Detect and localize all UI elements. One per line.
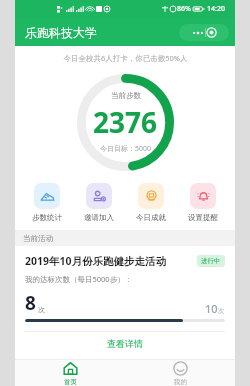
button[interactable]: 设置提醒 <box>177 179 229 226</box>
staticText: 今日成就 <box>136 213 166 222</box>
button[interactable]: More options <box>179 24 229 41</box>
staticText: 2019年10月份乐跑健步走活动 <box>25 254 197 268</box>
staticText: 2376 <box>93 103 158 141</box>
staticText: 次 <box>38 305 45 314</box>
staticText: 10 <box>205 301 218 316</box>
staticText: 查看详情 <box>107 338 143 349</box>
button[interactable]: 邀请加入 <box>73 179 125 226</box>
staticText: 今日全校共6人打卡，你已击败50%人 <box>63 53 188 63</box>
staticText: 8 <box>25 290 36 316</box>
staticText: 86% <box>177 4 191 14</box>
staticText: 我的达标次数（每日5000步）： <box>25 274 133 284</box>
staticText: 进行中 <box>201 257 221 265</box>
staticText: 当前步数 <box>111 91 141 100</box>
button[interactable]: 步数统计 <box>21 179 73 226</box>
button[interactable]: 查看详情 <box>25 332 225 355</box>
staticText: 当前活动 <box>23 234 53 243</box>
staticText: 邀请加入 <box>84 213 114 222</box>
button[interactable]: 2019年10月份乐跑健步走活动 <box>15 246 235 359</box>
staticText: 乐跑科技大学 <box>25 25 97 40</box>
staticText: 次 <box>218 307 225 315</box>
staticText: 设置提醒 <box>188 213 218 222</box>
button[interactable]: 首页 <box>15 360 125 386</box>
button[interactable]: 我的 <box>125 360 235 386</box>
button[interactable]: 今日成就 <box>125 179 177 226</box>
staticText: 首页 <box>64 378 77 386</box>
staticText: 今日目标：5000 <box>100 144 152 154</box>
staticText: 14:20 <box>207 4 225 14</box>
staticText: 我的 <box>174 378 187 386</box>
staticText: 步数统计 <box>32 213 62 222</box>
